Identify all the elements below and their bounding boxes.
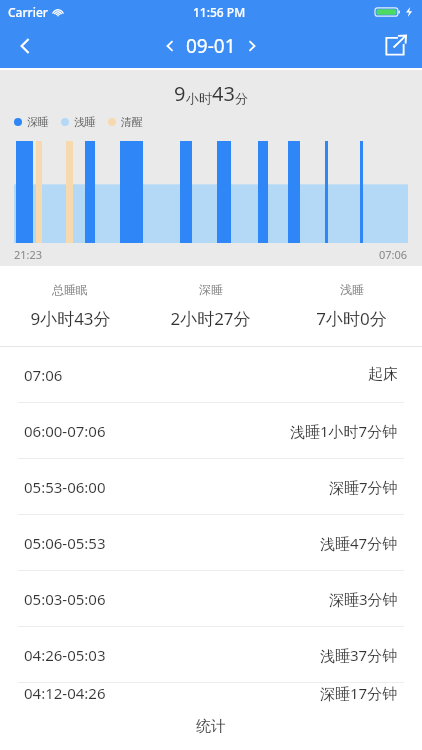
staticText: 04:12-04:26: [24, 683, 106, 703]
button[interactable]: 07:06: [0, 347, 422, 402]
staticText: 9小时43分: [30, 307, 111, 330]
staticText: 11:56 PM: [193, 4, 246, 20]
staticText: 深睡17分钟: [320, 683, 398, 703]
staticText: 21:23: [14, 247, 43, 262]
staticText: 深睡3分钟: [329, 589, 398, 609]
staticText: 浅睡37分钟: [320, 645, 398, 665]
staticText: 浅睡: [340, 282, 364, 297]
staticText: 07:06: [24, 365, 63, 385]
button[interactable]: 深睡: [140, 266, 281, 346]
button[interactable]: 05:06-05:53: [0, 515, 422, 570]
button[interactable]: 06:00-07:06: [0, 403, 422, 458]
staticText: 起床: [368, 365, 398, 384]
staticText: 43: [212, 80, 235, 107]
button[interactable]: Share: [368, 24, 422, 68]
button[interactable]: 浅睡: [281, 266, 422, 346]
staticText: 浅睡: [74, 115, 96, 129]
staticText: 06:00-07:06: [24, 421, 106, 441]
staticText: 05:53-06:00: [24, 477, 106, 497]
staticText: 统计: [196, 717, 226, 736]
staticText: 总睡眠: [52, 282, 88, 297]
button[interactable]: 总睡眠: [0, 266, 140, 346]
staticText: 7小时0分: [316, 307, 387, 330]
staticText: 小时: [186, 90, 212, 106]
button[interactable]: 04:26-05:03: [0, 627, 422, 682]
button[interactable]: 04:12-04:26: [0, 683, 422, 703]
staticText: 浅睡1小时7分钟: [290, 421, 398, 441]
staticText: 07:06: [379, 247, 408, 262]
staticText: 05:06-05:53: [24, 533, 106, 553]
staticText: 05:03-05:06: [24, 589, 106, 609]
staticText: 深睡: [27, 115, 49, 129]
button[interactable]: 05:03-05:06: [0, 571, 422, 626]
staticText: 深睡: [199, 282, 223, 297]
staticText: 09-01: [186, 33, 236, 59]
staticText: 分: [235, 90, 248, 106]
staticText: 深睡7分钟: [329, 477, 398, 497]
staticText: 04:26-05:03: [24, 645, 106, 665]
staticText: 9: [174, 80, 186, 107]
staticText: Carrier: [8, 4, 48, 20]
button[interactable]: 09-01: [162, 33, 260, 59]
button[interactable]: 统计: [0, 703, 422, 750]
button[interactable]: 05:53-06:00: [0, 459, 422, 514]
staticText: 浅睡47分钟: [320, 533, 398, 553]
button[interactable]: Back: [0, 24, 52, 68]
staticText: 清醒: [121, 115, 143, 129]
staticText: 2小时27分: [170, 307, 251, 330]
